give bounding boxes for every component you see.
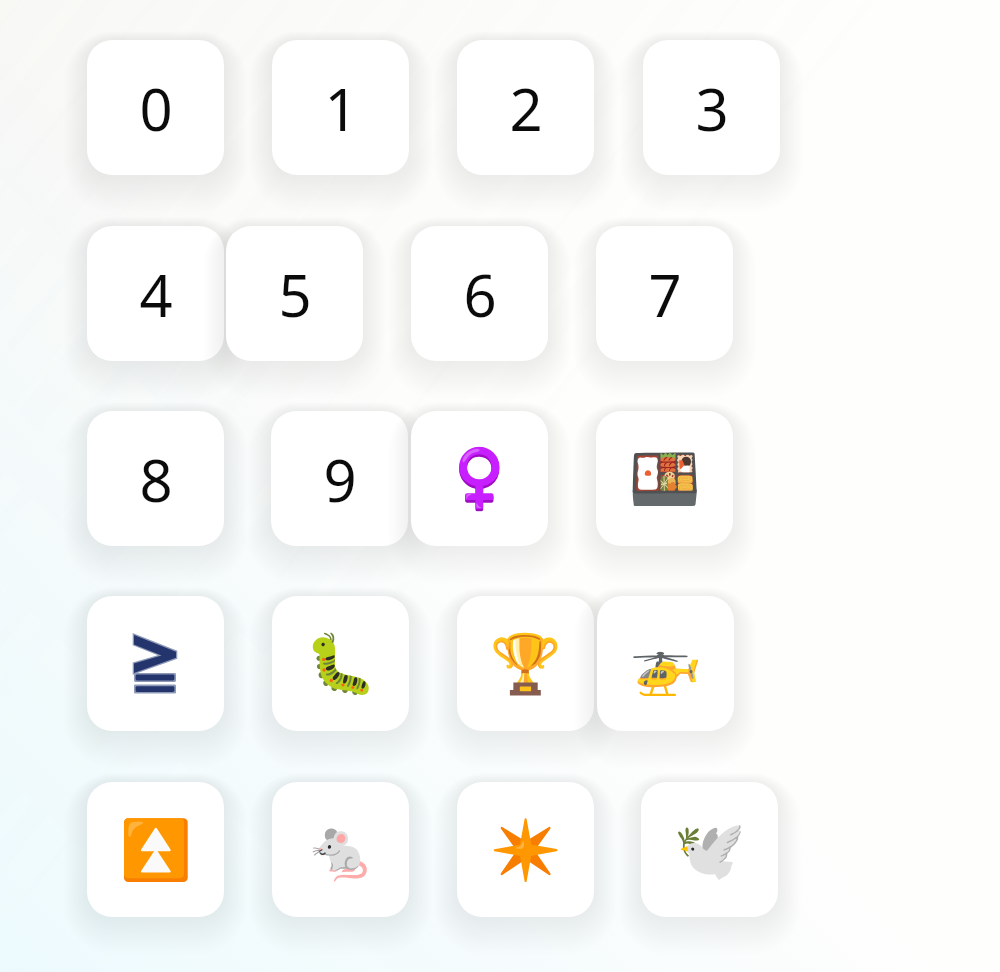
button[interactable]: dove xyxy=(641,782,778,917)
staticText: 🍱 xyxy=(628,445,701,513)
staticText: 🚁 xyxy=(629,630,702,698)
staticText: 🕊️ xyxy=(673,816,746,884)
button[interactable]: trophy xyxy=(457,596,594,731)
staticText: 6 xyxy=(463,255,497,334)
button[interactable]: 1 xyxy=(272,40,409,175)
button[interactable]: 5 xyxy=(226,226,363,361)
staticText: 5 xyxy=(278,255,312,334)
button[interactable]: bento box xyxy=(596,411,733,546)
staticText: 7 xyxy=(648,255,682,334)
button[interactable]: 3 xyxy=(643,40,780,175)
staticText: ⏫ xyxy=(119,816,192,884)
staticText: 🐁 xyxy=(304,816,377,884)
staticText: 9 xyxy=(323,440,357,519)
button[interactable]: female sign xyxy=(411,411,548,546)
staticText: 4 xyxy=(139,255,173,334)
staticText: ✴️ xyxy=(489,816,562,884)
button[interactable]: greater-than over equal to xyxy=(87,596,224,731)
staticText: ♀️ xyxy=(443,445,516,513)
button[interactable]: 6 xyxy=(411,226,548,361)
button[interactable]: 8 xyxy=(87,411,224,546)
staticText: 2 xyxy=(509,69,543,148)
staticText: 🏆 xyxy=(489,630,562,698)
button[interactable]: fast up button xyxy=(87,782,224,917)
button[interactable]: 4 xyxy=(87,226,224,361)
staticText: 1 xyxy=(324,69,358,148)
button[interactable]: eight pointed star xyxy=(457,782,594,917)
button[interactable]: 9 xyxy=(271,411,408,546)
button[interactable]: mouse xyxy=(272,782,409,917)
staticText: 3 xyxy=(695,69,729,148)
button[interactable]: 7 xyxy=(596,226,733,361)
staticText: 0 xyxy=(139,69,173,148)
button[interactable]: 0 xyxy=(87,40,224,175)
staticText: 🐛 xyxy=(304,630,377,698)
button[interactable]: bug xyxy=(272,596,409,731)
button[interactable]: 2 xyxy=(457,40,594,175)
button[interactable]: helicopter xyxy=(597,596,734,731)
staticText: 8 xyxy=(139,440,173,519)
